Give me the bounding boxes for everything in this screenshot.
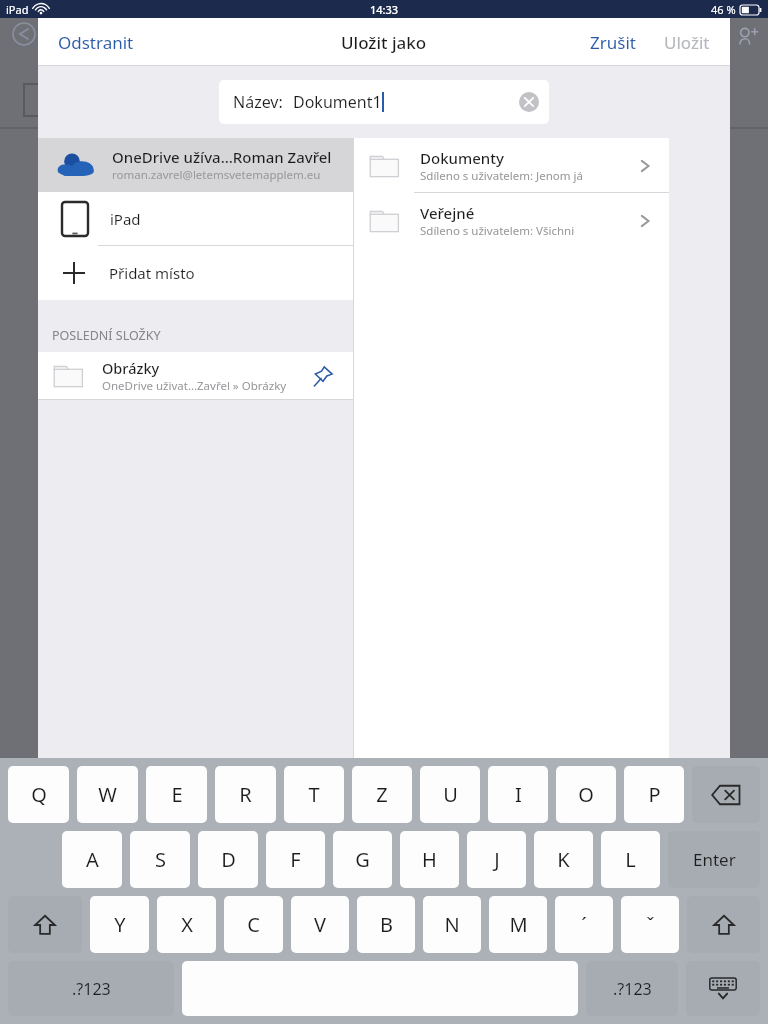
button[interactable]: Zrušit	[580, 25, 646, 60]
staticText: D	[221, 846, 236, 873]
staticText: T	[308, 781, 320, 808]
staticText: 14:33	[370, 2, 399, 17]
button[interactable]: Back	[8, 18, 40, 50]
staticText: X	[181, 911, 193, 938]
staticText: Uložit jako	[341, 31, 427, 54]
button[interactable]: W	[77, 766, 138, 823]
button[interactable]: P	[624, 766, 684, 823]
button[interactable]: C	[224, 896, 283, 953]
staticText: Odstranit	[58, 31, 134, 54]
button[interactable]: L	[601, 831, 660, 888]
staticText: E	[171, 781, 183, 808]
button[interactable]: .?123	[586, 961, 678, 1016]
staticText: L	[625, 846, 636, 873]
button[interactable]: M	[489, 896, 547, 953]
staticText: R	[239, 781, 252, 808]
button[interactable]: G	[333, 831, 392, 888]
staticText: Dokumenty	[420, 148, 504, 168]
staticText: N	[444, 911, 460, 938]
staticText: Enter	[693, 848, 736, 871]
staticText: ˇ	[646, 911, 655, 938]
staticText: iPad	[110, 209, 141, 229]
staticText: J	[494, 846, 500, 873]
staticText: Zrušit	[590, 31, 636, 54]
button[interactable]: A	[62, 831, 122, 888]
button[interactable]: ˇ	[621, 896, 679, 953]
button[interactable]: X	[157, 896, 216, 953]
button[interactable]: J	[467, 831, 526, 888]
staticText: H	[422, 846, 437, 873]
button[interactable]: Z	[352, 766, 412, 823]
button[interactable]: Add person	[730, 20, 764, 54]
button[interactable]: K	[534, 831, 593, 888]
button[interactable]: F	[266, 831, 325, 888]
staticText: K	[557, 846, 570, 873]
staticText: Veřejné	[420, 203, 475, 223]
button[interactable]: Obrázky	[38, 352, 353, 400]
staticText: S	[155, 846, 166, 873]
staticText: Z	[376, 781, 388, 808]
button[interactable]: Q	[8, 766, 69, 823]
staticText: OneDrive uživat…Zavřel » Obrázky	[102, 378, 287, 394]
staticText: Název:	[233, 91, 283, 113]
staticText: W	[98, 781, 117, 808]
staticText: Uložit	[664, 31, 710, 54]
staticText: Obrázky	[102, 358, 160, 378]
button[interactable]: E	[146, 766, 207, 823]
staticText: B	[380, 911, 393, 938]
button[interactable]: Backspace	[692, 766, 760, 823]
staticText: U	[443, 781, 458, 808]
staticText: I	[515, 781, 522, 808]
button[interactable]: S	[130, 831, 190, 888]
staticText: POSLEDNÍ SLOŽKY	[52, 327, 161, 344]
staticText: Y	[114, 911, 126, 938]
button[interactable]: N	[423, 896, 481, 953]
button[interactable]: iPad	[38, 192, 353, 246]
button[interactable]: Odstranit	[48, 25, 144, 60]
button[interactable]: B	[357, 896, 415, 953]
button[interactable]: Y	[90, 896, 149, 953]
button[interactable]: D	[198, 831, 258, 888]
staticText: Dokument1	[293, 91, 382, 113]
button[interactable]: T	[284, 766, 344, 823]
button[interactable]: Hide keyboard	[686, 961, 760, 1016]
button[interactable]: .?123	[8, 961, 174, 1016]
staticText: A	[86, 846, 99, 873]
button[interactable]: Pin folder	[311, 364, 335, 388]
button[interactable]: Uložit	[654, 25, 720, 60]
staticText: 46 %	[711, 2, 736, 17]
staticText: O	[578, 781, 594, 808]
button[interactable]: O	[556, 766, 616, 823]
staticText: F	[290, 846, 301, 873]
staticText: G	[355, 846, 370, 873]
staticText: P	[648, 781, 661, 808]
staticText: OneDrive užíva…Roman Zavřel	[112, 147, 332, 167]
button[interactable]: V	[291, 896, 349, 953]
button[interactable]: R	[215, 766, 276, 823]
staticText: Sdíleno s uživatelem: Všichni	[420, 223, 575, 239]
button[interactable]: Shift	[687, 896, 760, 953]
staticText: Q	[31, 781, 47, 808]
staticText: iPad	[6, 2, 29, 17]
button[interactable]: Enter	[668, 831, 760, 888]
button[interactable]: Dokumenty	[354, 138, 669, 193]
button[interactable]: OneDrive užíva…Roman Zavřel	[38, 138, 353, 192]
staticText: Sdíleno s uživatelem: Jenom já	[420, 168, 583, 184]
staticText: ´	[581, 911, 587, 938]
button[interactable]: Shift	[8, 896, 82, 953]
staticText: .?123	[613, 978, 652, 1000]
staticText: C	[247, 911, 260, 938]
button[interactable]: ´	[555, 896, 613, 953]
staticText: roman.zavrel@letemsvetemapplem.eu	[112, 167, 321, 183]
staticText: Přidat místo	[109, 263, 195, 283]
button[interactable]: Název:	[219, 80, 549, 124]
staticText: .?123	[72, 978, 111, 1000]
button[interactable]: Přidat místo	[38, 246, 353, 300]
button[interactable]: U	[420, 766, 480, 823]
button[interactable]: I	[488, 766, 548, 823]
button[interactable]: Veřejné	[354, 193, 669, 248]
button[interactable]: H	[400, 831, 459, 888]
button[interactable]: Clear text	[519, 92, 539, 112]
staticText: V	[314, 911, 326, 938]
